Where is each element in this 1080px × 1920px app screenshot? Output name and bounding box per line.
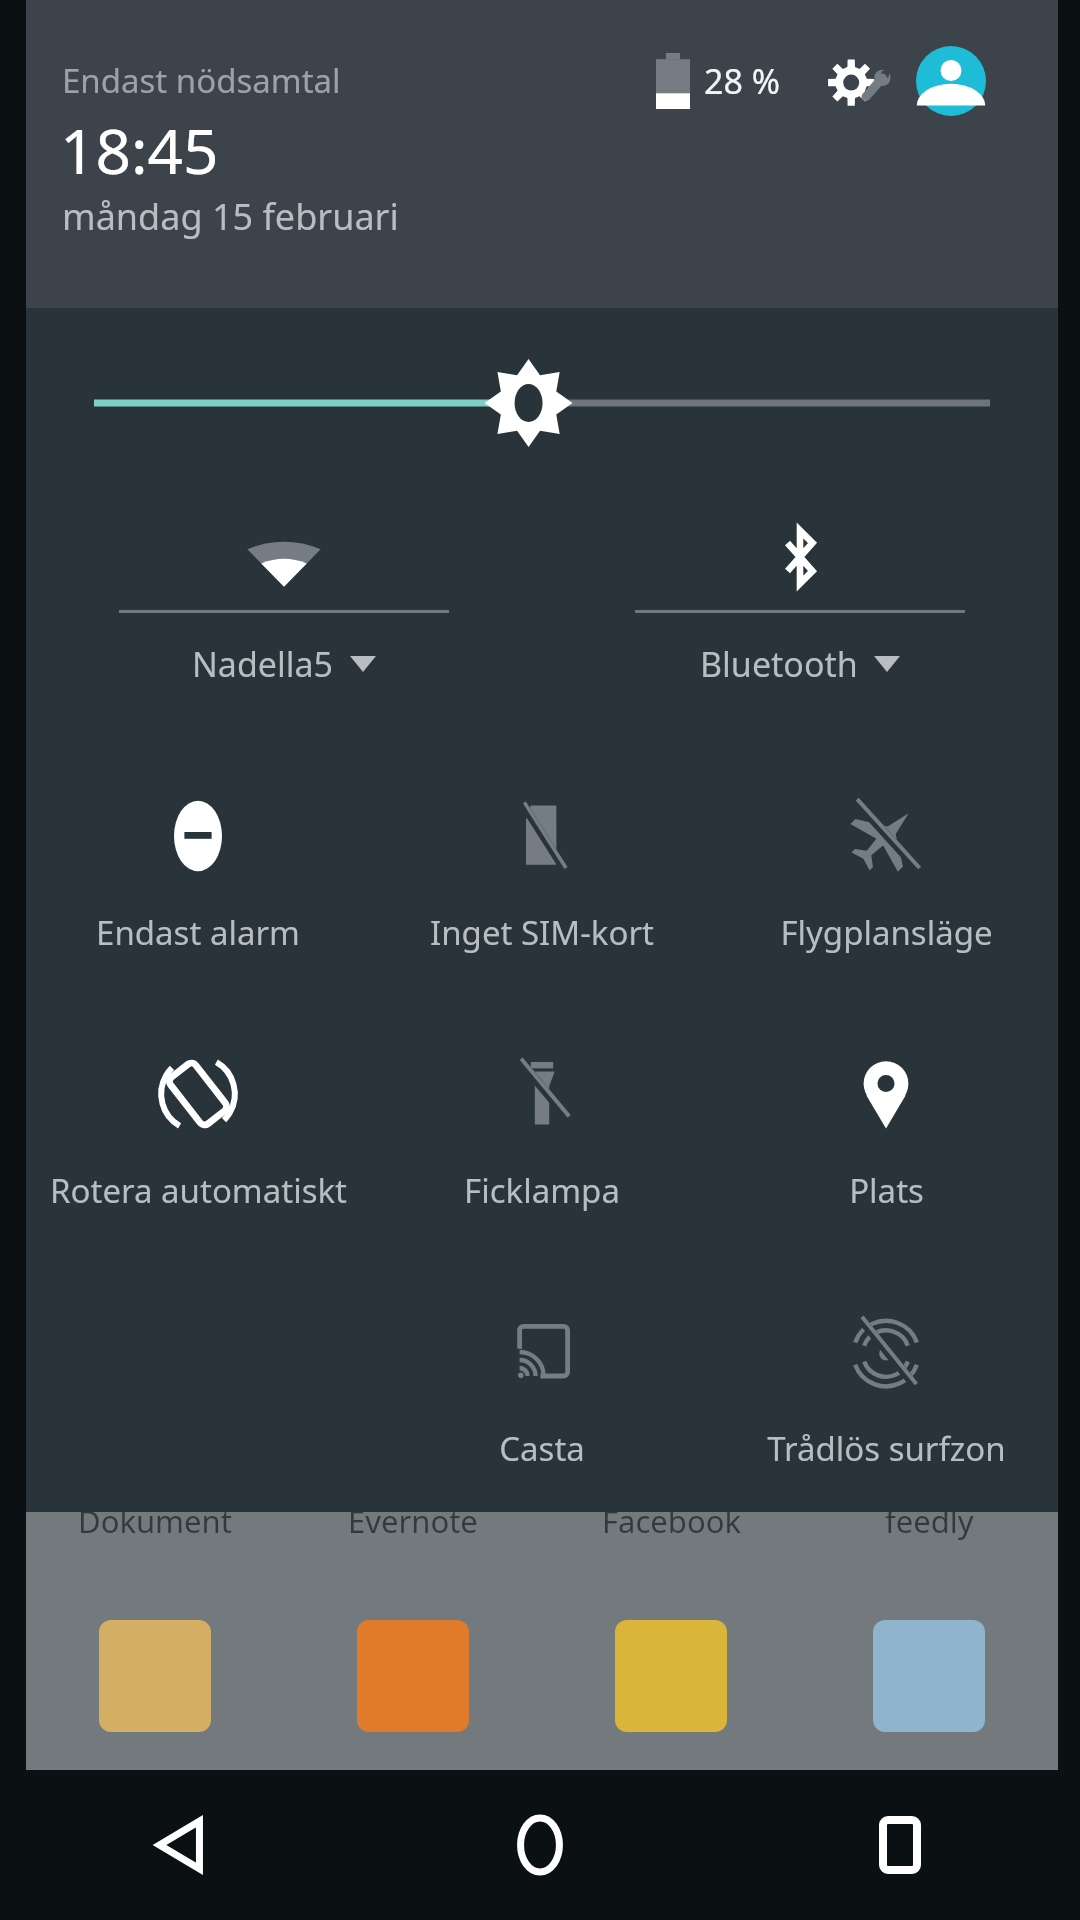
button[interactable]: Recents bbox=[720, 1770, 1080, 1920]
button[interactable]: Rotera automatiskt bbox=[26, 1020, 370, 1278]
button[interactable]: Inget SIM-kort bbox=[370, 762, 714, 1020]
staticText: måndag 15 februari bbox=[62, 192, 399, 241]
staticText: feedly bbox=[885, 1500, 974, 1542]
button[interactable]: Settings bbox=[816, 38, 902, 124]
staticText: 18:45 bbox=[60, 108, 219, 192]
button[interactable]: Ficklampa bbox=[370, 1020, 714, 1278]
button[interactable]: Nadella5 bbox=[26, 498, 542, 728]
button[interactable]: Bluetooth bbox=[542, 498, 1058, 728]
staticText: Evernote bbox=[348, 1500, 478, 1542]
staticText: Trådlös surfzon bbox=[767, 1426, 1006, 1471]
staticText: Facebook bbox=[602, 1500, 741, 1542]
staticText: Dokument bbox=[78, 1500, 232, 1542]
button[interactable]: Casta bbox=[370, 1278, 714, 1512]
staticText: Nadella5 bbox=[192, 641, 334, 687]
staticText: Inget SIM-kort bbox=[430, 910, 654, 955]
button[interactable]: Plats bbox=[714, 1020, 1058, 1278]
button[interactable]: Flygplansläge bbox=[714, 762, 1058, 1020]
button[interactable]: User profile bbox=[912, 42, 990, 120]
button[interactable]: Home bbox=[360, 1770, 720, 1920]
button[interactable]: Brightness bbox=[26, 308, 1058, 498]
staticText: Rotera automatiskt bbox=[50, 1168, 347, 1213]
staticText: 28 % bbox=[704, 58, 780, 104]
button[interactable]: Back bbox=[0, 1770, 360, 1920]
staticText: Endast nödsamtal bbox=[62, 58, 341, 103]
staticText: Casta bbox=[499, 1426, 585, 1471]
staticText: Plats bbox=[849, 1168, 924, 1213]
staticText: Endast alarm bbox=[96, 910, 300, 955]
button[interactable]: Trådlös surfzon bbox=[714, 1278, 1058, 1512]
staticText: Ficklampa bbox=[464, 1168, 620, 1213]
staticText: Bluetooth bbox=[700, 641, 858, 687]
staticText: Flygplansläge bbox=[780, 910, 993, 955]
button[interactable]: Endast alarm bbox=[26, 762, 370, 1020]
